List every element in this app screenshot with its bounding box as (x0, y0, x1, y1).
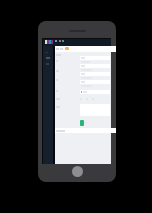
button[interactable]: Home (72, 166, 83, 177)
button[interactable]: Submit (80, 120, 84, 126)
button[interactable]: App logo (45, 40, 53, 44)
button[interactable]: Primary action (65, 47, 69, 50)
